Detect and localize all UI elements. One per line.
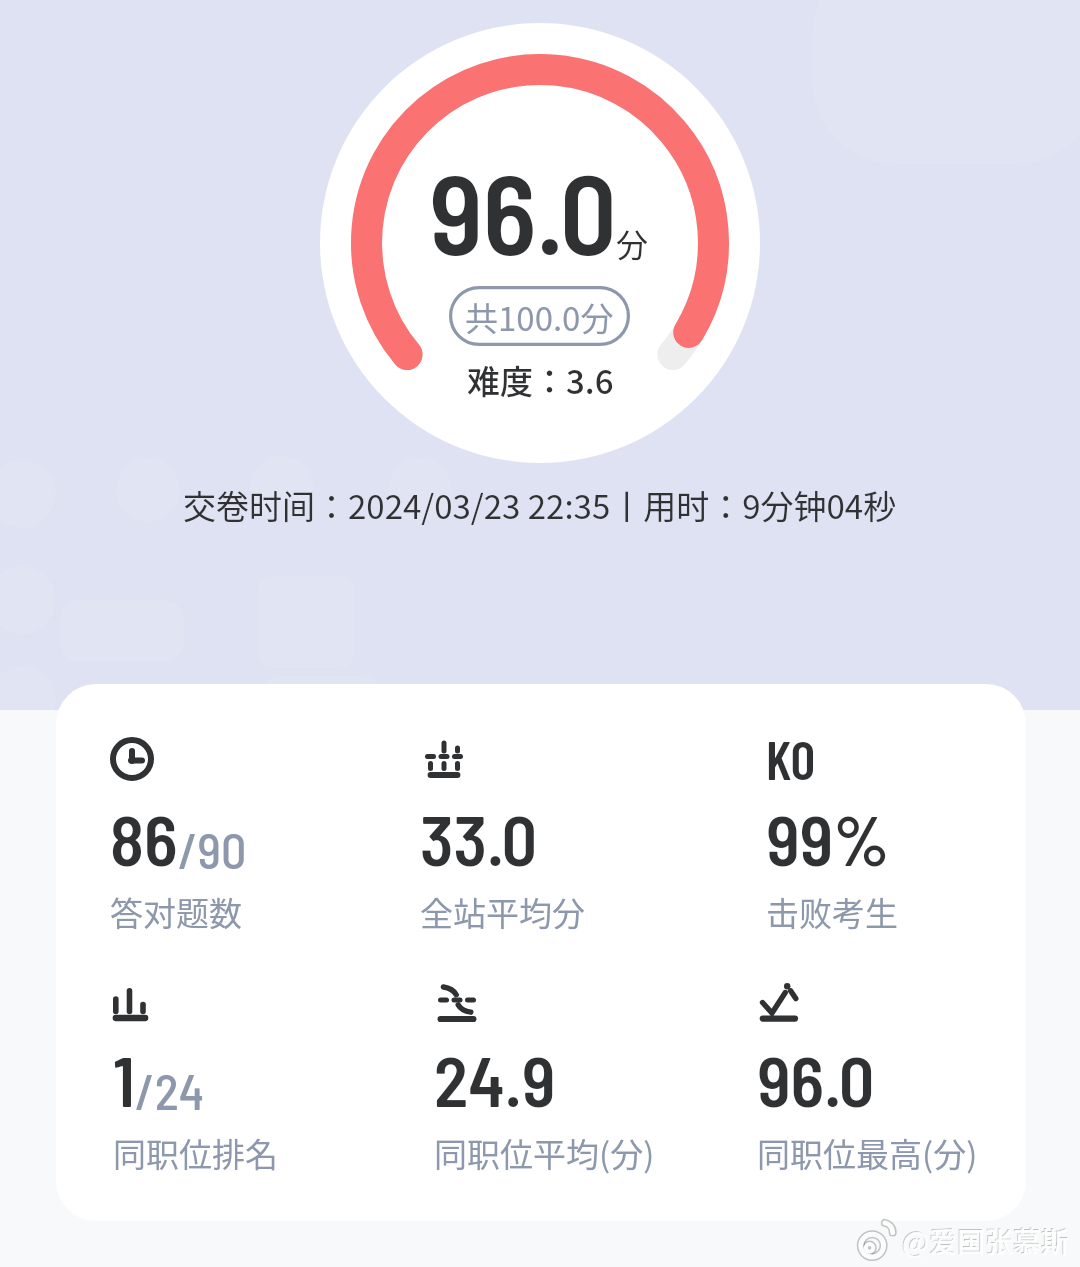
staticText: 全站平均分 xyxy=(420,888,585,936)
other: Peer average score xyxy=(438,984,482,1028)
button[interactable]: Site average score xyxy=(420,740,710,936)
staticText: 同职位排名 xyxy=(113,1129,278,1177)
staticText: /90 xyxy=(178,819,247,879)
other: Peer rank xyxy=(110,986,154,1030)
other: Peer maximum score xyxy=(757,980,801,1024)
staticText: 1 xyxy=(113,1037,135,1121)
staticText: 24.9 xyxy=(434,1037,556,1121)
staticText: @爱国张慕斯 xyxy=(902,1221,1070,1262)
staticText: 同职位平均(分) xyxy=(434,1129,655,1177)
staticText: 答对题数 xyxy=(110,888,242,936)
button[interactable]: Peer maximum score xyxy=(757,981,1026,1177)
staticText: KO xyxy=(766,727,816,791)
staticText: 96.0 xyxy=(757,1037,875,1121)
staticText: 难度：3.6 xyxy=(467,356,614,404)
staticText: 33.0 xyxy=(420,796,538,880)
staticText: 同职位最高(分) xyxy=(757,1129,978,1177)
other: Site average score xyxy=(425,740,469,784)
staticText: 共100.0分 xyxy=(465,293,614,341)
other: Beat candidates xyxy=(766,740,816,784)
button[interactable]: Peer average score xyxy=(434,981,724,1177)
staticText: 99% xyxy=(766,796,890,880)
staticText: 86 xyxy=(110,796,178,880)
staticText: /24 xyxy=(135,1060,204,1120)
button[interactable]: Beat candidates xyxy=(766,740,1026,936)
staticText: 击败考生 xyxy=(766,888,898,936)
staticText: 96.0 xyxy=(429,143,617,277)
staticText: 交卷时间：2024/03/23 22:35丨用时：9分钟04秒 xyxy=(183,481,897,529)
button[interactable]: Time used xyxy=(110,740,400,936)
other: Time used xyxy=(110,735,154,779)
staticText: @爱国张慕斯 xyxy=(901,1220,1069,1261)
button[interactable]: Peer rank xyxy=(113,981,403,1177)
staticText: 分 xyxy=(616,220,649,266)
